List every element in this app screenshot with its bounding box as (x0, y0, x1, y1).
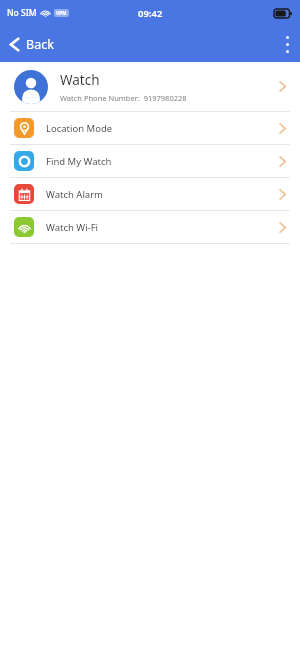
button[interactable]: Location Mode (0, 112, 300, 144)
button[interactable]: More options (275, 30, 300, 59)
button[interactable]: Back (0, 30, 64, 59)
button[interactable]: Find My Watch (0, 145, 300, 177)
staticText: Location Mode (46, 122, 279, 135)
staticText: Watch Alarm (46, 188, 279, 201)
button[interactable]: Watch (0, 62, 300, 111)
staticText: Watch (60, 71, 100, 89)
staticText: Watch Wi-Fi (46, 221, 279, 234)
staticText: No SIM (7, 7, 37, 19)
staticText: Back (26, 36, 54, 53)
button[interactable]: Watch Alarm (0, 178, 300, 210)
button[interactable]: Watch Wi-Fi (0, 211, 300, 243)
staticText: Find My Watch (46, 155, 279, 168)
staticText: Watch Phone Number: 9197980228 (60, 93, 187, 103)
staticText: 09:42 (138, 7, 163, 20)
staticText: VPN (56, 10, 67, 17)
